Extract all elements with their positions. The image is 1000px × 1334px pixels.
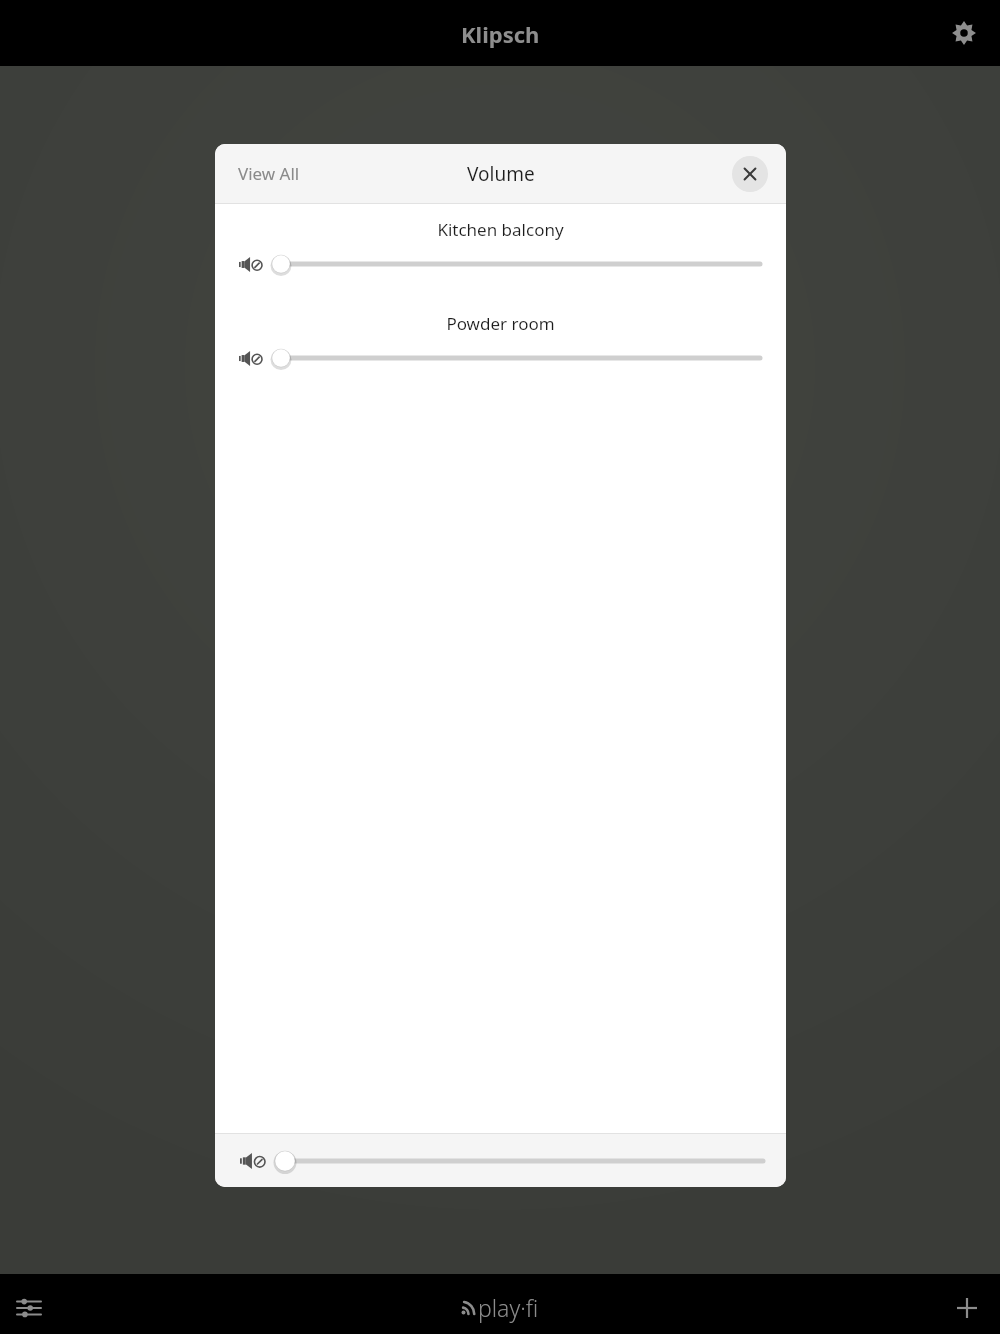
- button[interactable]: Settings: [944, 13, 984, 53]
- button[interactable]: Mute Kitchen balcony: [235, 248, 267, 280]
- button[interactable]: Master volume: [274, 1146, 764, 1176]
- button[interactable]: Add: [944, 1285, 990, 1331]
- button[interactable]: Mute Powder room: [235, 342, 267, 374]
- staticText: Kitchen balcony: [215, 218, 786, 241]
- button[interactable]: Volume Kitchen balcony: [271, 250, 761, 278]
- staticText: Volume: [467, 161, 535, 187]
- button[interactable]: Settings sliders: [6, 1285, 52, 1331]
- staticText: Powder room: [215, 312, 786, 335]
- button[interactable]: Close: [732, 156, 768, 192]
- button[interactable]: Mute all: [236, 1144, 270, 1178]
- staticText: Klipsch: [461, 19, 540, 49]
- button[interactable]: View All: [225, 152, 313, 195]
- button[interactable]: Volume Powder room: [271, 344, 761, 372]
- staticText: View All: [238, 162, 300, 185]
- staticText: play·fi: [478, 1292, 539, 1323]
